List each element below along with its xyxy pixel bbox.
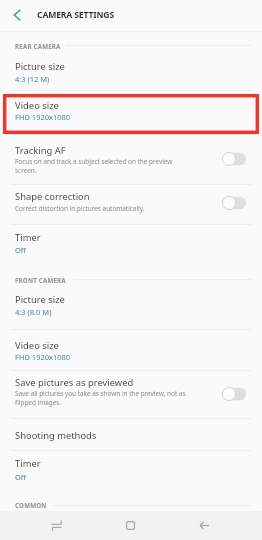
staticText: Off [15, 245, 27, 255]
staticText: CAMERA SETTINGS [37, 9, 114, 21]
button[interactable]: Recent apps [20, 511, 93, 540]
button[interactable]: Picture size [0, 286, 262, 328]
button[interactable]: Shooting methods [0, 419, 262, 450]
staticText: Save all pictures you take as shown in t… [15, 389, 186, 407]
button[interactable]: Video size [0, 329, 262, 369]
staticText: Shooting methods [15, 429, 97, 442]
button[interactable]: Picture size [0, 52, 262, 90]
button[interactable]: Shape correction [0, 184, 262, 224]
button[interactable]: Toggle switch, off [222, 387, 246, 401]
staticText: FHD 1920x1080 [15, 112, 71, 122]
staticText: COMMON [15, 501, 47, 509]
staticText: 4:3 (12 M) [15, 74, 50, 84]
staticText: Save pictures as previewed [15, 376, 134, 389]
button[interactable]: Video size [0, 90, 262, 134]
button[interactable]: Timer [0, 450, 262, 488]
button[interactable]: Tracking AF [0, 134, 262, 183]
staticText: Timer [15, 231, 41, 244]
staticText: Off [15, 472, 27, 482]
button[interactable]: Toggle switch, off [222, 152, 246, 166]
staticText: Tracking AF [15, 144, 66, 157]
staticText: Video size [15, 99, 59, 112]
button[interactable]: Home [93, 511, 167, 540]
staticText: 4:3 (8.0 M) [15, 307, 52, 317]
staticText: Picture size [15, 60, 65, 73]
button[interactable]: Toggle switch, off [222, 196, 246, 210]
staticText: Video size [15, 339, 59, 352]
staticText: Shape correction [15, 190, 90, 203]
button[interactable]: Timer [0, 224, 262, 262]
button[interactable]: Back [167, 511, 241, 540]
staticText: Focus on and track a subject selected on… [15, 157, 173, 175]
staticText: Correct distortion in pictures automatic… [15, 204, 145, 213]
staticText: REAR CAMERA [15, 42, 61, 50]
staticText: FHD 1920x1080 [15, 352, 71, 362]
staticText: FRONT CAMERA [15, 276, 66, 284]
staticText: Picture size [15, 293, 65, 306]
button[interactable]: Navigate up [2, 1, 30, 29]
button[interactable]: Save pictures as previewed [0, 370, 262, 417]
staticText: Timer [15, 457, 41, 470]
